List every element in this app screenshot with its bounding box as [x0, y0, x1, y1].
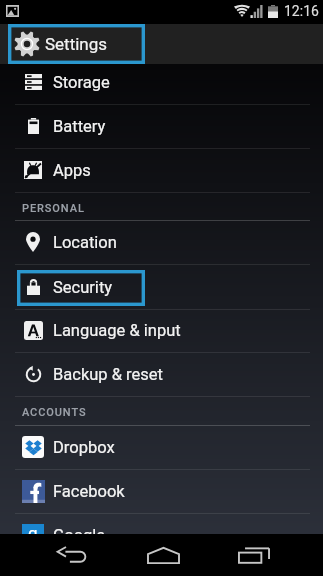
button[interactable]: Dropbox	[0, 425, 323, 470]
staticText: ACCOUNTS	[22, 406, 87, 419]
button[interactable]: Back	[22, 534, 122, 576]
button[interactable]: Apps	[0, 148, 323, 193]
button[interactable]: Language & input	[0, 308, 323, 353]
staticText: PERSONAL	[22, 202, 85, 215]
staticText: 12:16	[284, 3, 319, 19]
button[interactable]: Security	[0, 265, 323, 310]
staticText: Backup & reset	[53, 365, 163, 384]
button[interactable]: Home	[113, 534, 213, 576]
staticText: Settings	[45, 34, 108, 54]
staticText: g	[28, 523, 38, 543]
button[interactable]: Facebook	[0, 469, 323, 514]
button[interactable]: Storage	[0, 64, 323, 105]
button[interactable]: Backup & reset	[0, 352, 323, 397]
button[interactable]: Settings	[0, 24, 323, 64]
button[interactable]: g	[0, 513, 323, 558]
button[interactable]: Location	[0, 220, 323, 265]
button[interactable]: Recent apps	[204, 534, 304, 576]
staticText: Battery	[53, 117, 106, 136]
staticText: Apps	[53, 161, 91, 180]
staticText: Storage	[53, 73, 110, 92]
staticText: Language & input	[53, 321, 181, 340]
staticText: Google	[53, 526, 106, 545]
staticText: Location	[53, 233, 117, 252]
staticText: Security	[53, 278, 113, 297]
staticText: Facebook	[53, 482, 125, 501]
staticText: Dropbox	[53, 438, 115, 457]
button[interactable]: Battery	[0, 104, 323, 149]
